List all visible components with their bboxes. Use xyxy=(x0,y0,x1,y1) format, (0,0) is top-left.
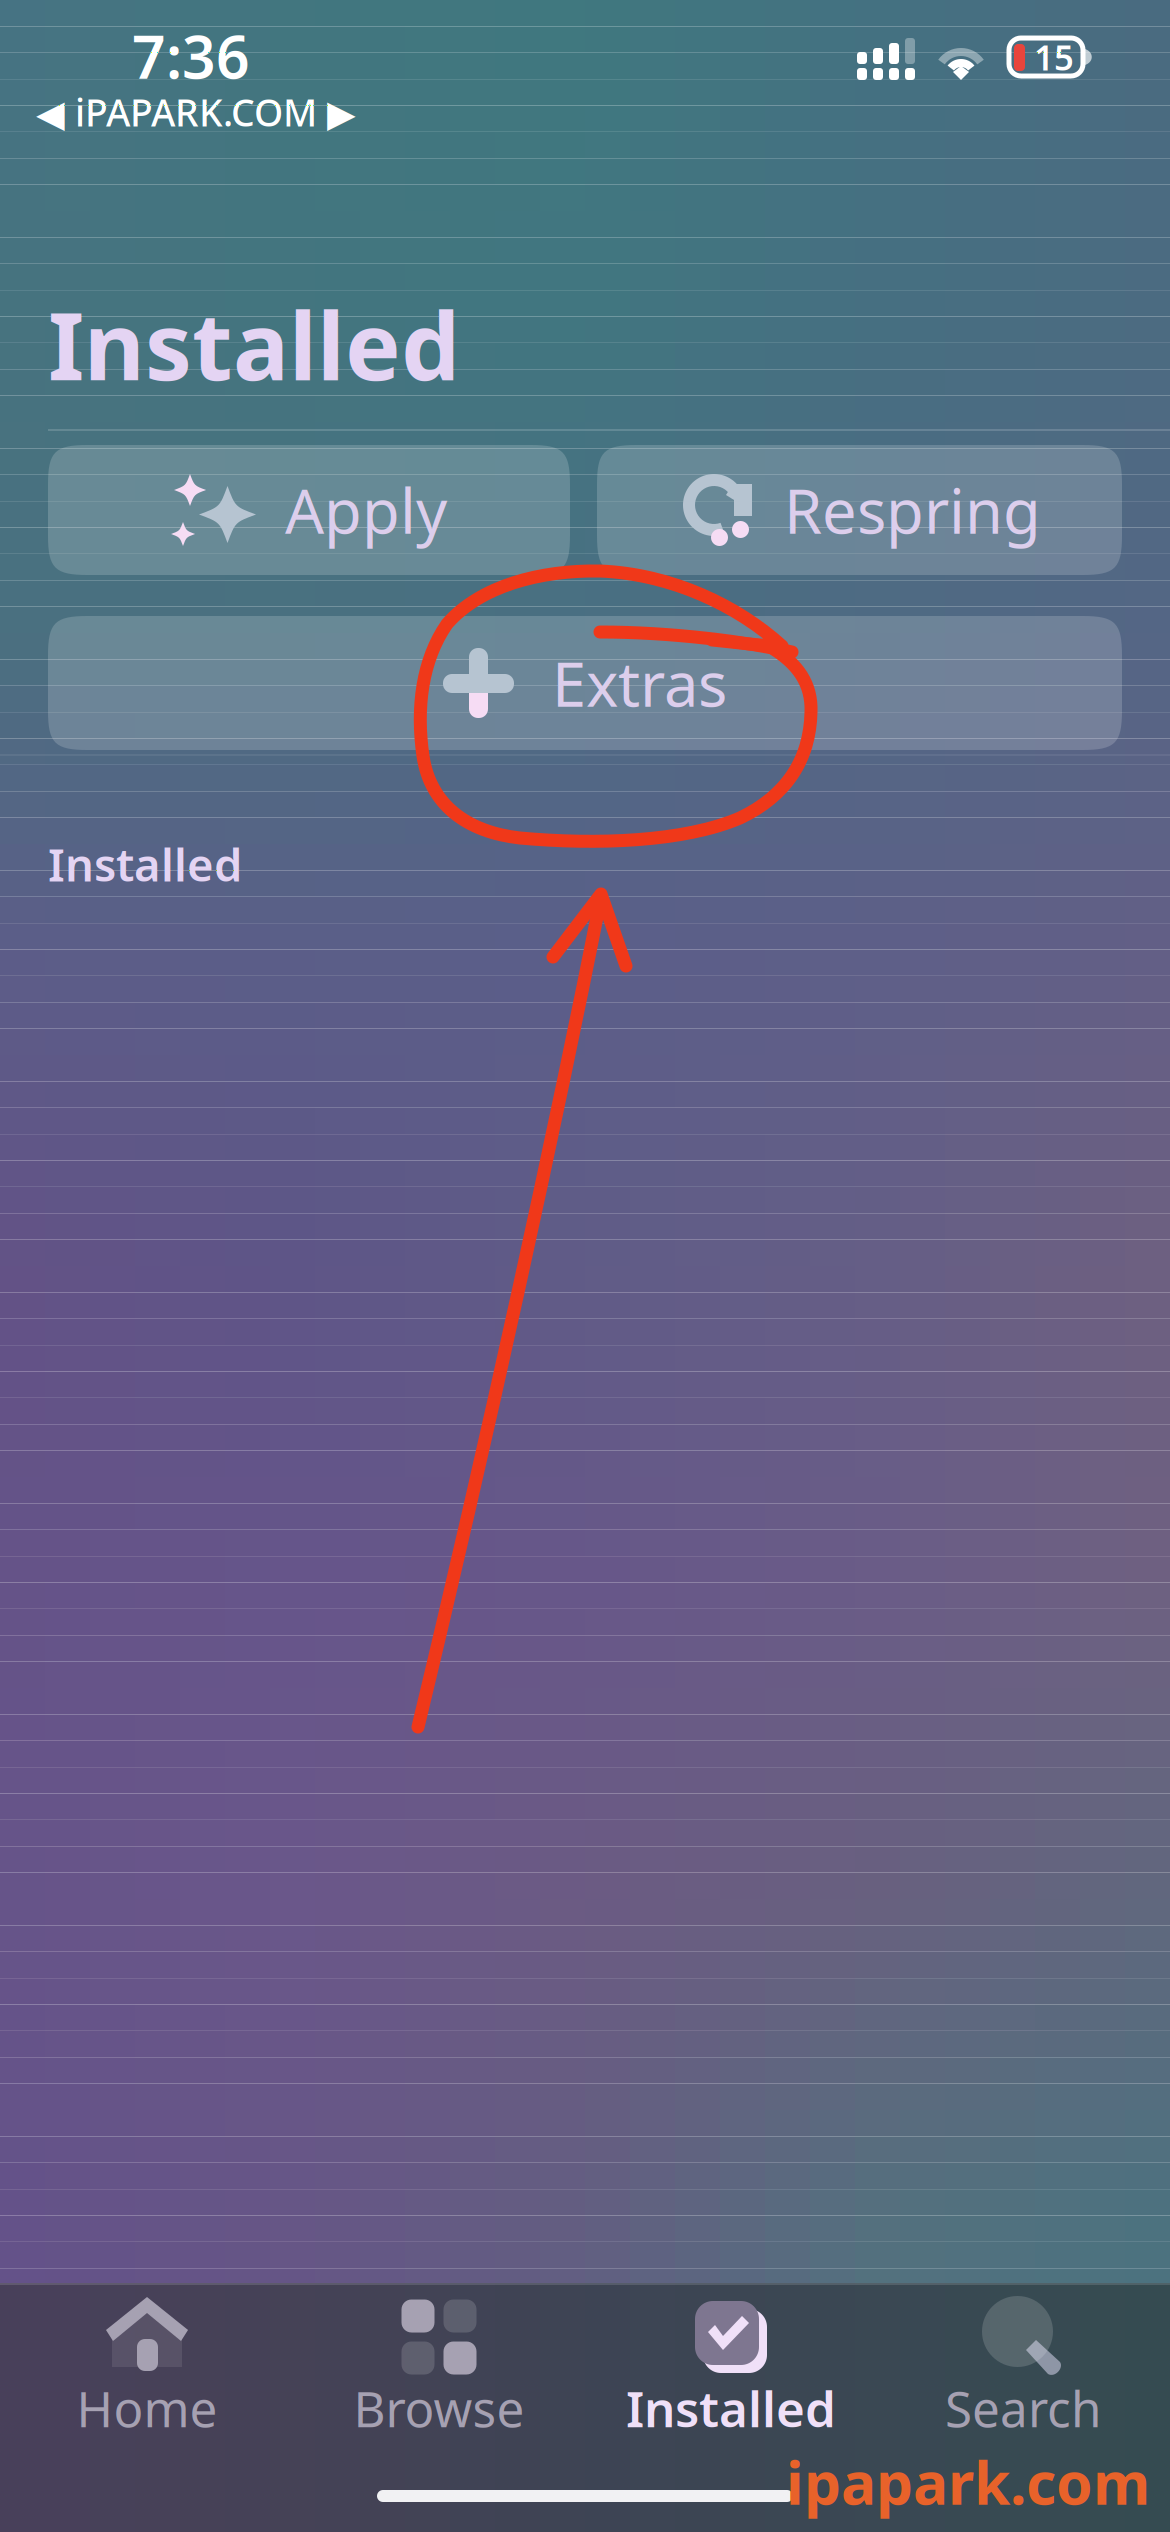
staticText: Installed xyxy=(48,282,460,406)
button[interactable]: Installed xyxy=(585,2285,877,2437)
staticText: Respring xyxy=(784,469,1041,551)
staticText: Extras xyxy=(552,642,727,724)
staticText: ipapark.com xyxy=(786,2443,1150,2521)
button[interactable]: Browse xyxy=(293,2285,585,2437)
button[interactable]: Apply xyxy=(48,445,570,575)
staticText: ◀ iPAPARK.COM ▶ xyxy=(36,87,356,137)
staticText: Apply xyxy=(285,469,447,551)
button[interactable]: Search xyxy=(877,2285,1169,2437)
staticText: 15 xyxy=(1034,34,1074,80)
staticText: 7:36 xyxy=(132,17,250,95)
button[interactable]: Extras xyxy=(48,616,1122,750)
button[interactable]: Respring xyxy=(597,445,1122,575)
staticText: Installed xyxy=(626,2375,836,2441)
staticText: Search xyxy=(945,2375,1101,2441)
button[interactable]: Home xyxy=(1,2285,293,2437)
staticText: Installed xyxy=(48,834,242,894)
staticText: Browse xyxy=(353,2375,524,2441)
staticText: Home xyxy=(76,2375,217,2441)
